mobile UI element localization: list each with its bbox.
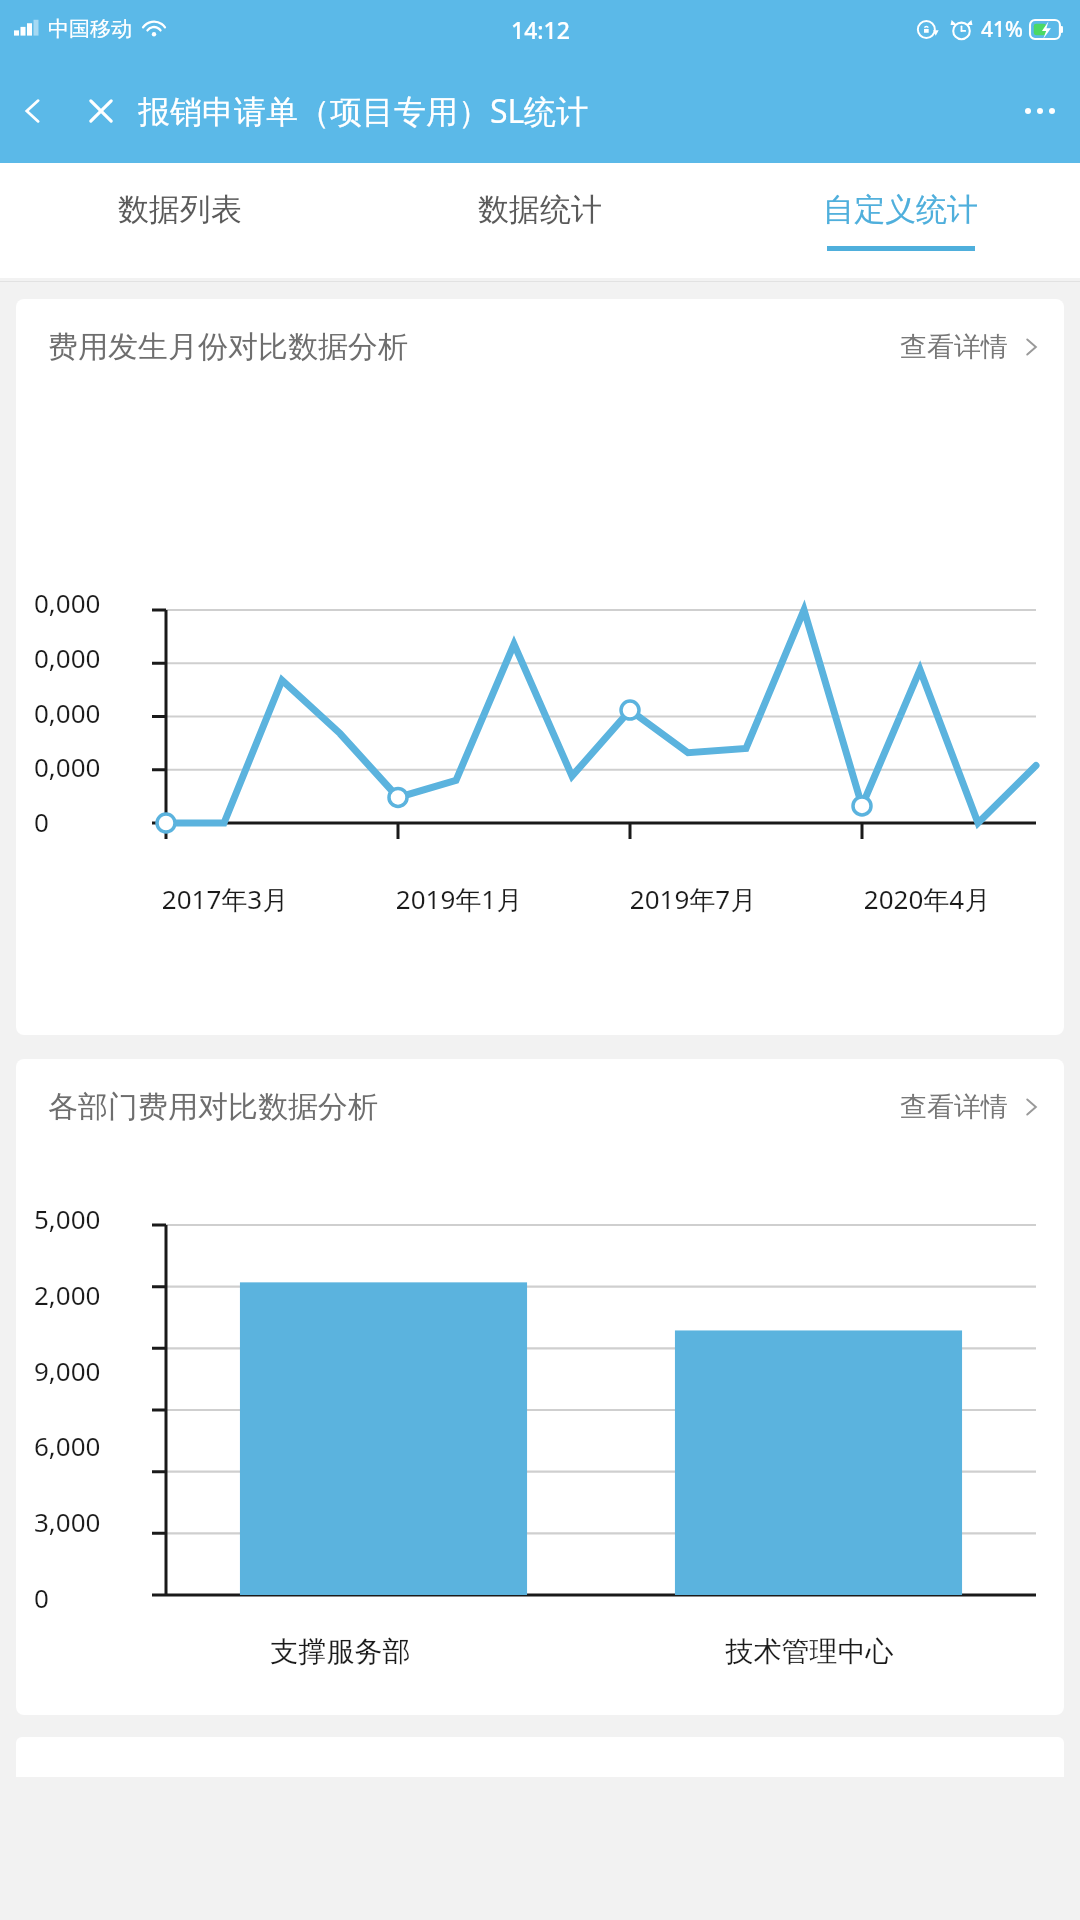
button[interactable]: 数据列表 xyxy=(0,163,360,278)
staticText: 0 xyxy=(34,1580,140,1615)
staticText: 0,000 xyxy=(34,585,140,620)
button[interactable]: 数据统计 xyxy=(360,163,720,278)
staticText: 6,000 xyxy=(34,1428,140,1463)
staticText: 2019年1月 xyxy=(342,881,576,917)
staticText: 5,000 xyxy=(34,1201,140,1236)
staticText: 2020年4月 xyxy=(810,881,1044,917)
button[interactable]: Close xyxy=(66,58,136,163)
button[interactable]: 查看详情 xyxy=(900,330,1042,364)
staticText: 0,000 xyxy=(34,695,140,730)
staticText: 各部门费用对比数据分析 xyxy=(48,1088,378,1126)
staticText: 2019年7月 xyxy=(576,881,810,917)
staticText: 14:12 xyxy=(511,14,570,45)
staticText: 中国移动 xyxy=(48,16,132,42)
button[interactable]: Back xyxy=(0,58,66,163)
staticText: 自定义统计 xyxy=(823,190,978,229)
staticText: 查看详情 xyxy=(900,330,1008,364)
staticText: 报销申请单（项目专用）SL统计 xyxy=(138,89,589,133)
staticText: 支撑服务部 xyxy=(106,1634,575,1669)
staticText: 数据统计 xyxy=(478,190,602,229)
button[interactable]: 自定义统计 xyxy=(720,163,1080,278)
button[interactable]: More options xyxy=(1000,58,1080,163)
staticText: 9,000 xyxy=(34,1353,140,1388)
staticText: 2017年3月 xyxy=(108,881,342,917)
button[interactable]: 查看详情 xyxy=(900,1090,1042,1124)
staticText: 查看详情 xyxy=(900,1090,1008,1124)
staticText: 数据列表 xyxy=(118,190,242,229)
staticText: 3,000 xyxy=(34,1504,140,1539)
staticText: 0,000 xyxy=(34,640,140,675)
staticText: 0,000 xyxy=(34,749,140,784)
staticText: 41% xyxy=(981,15,1023,44)
staticText: 费用发生月份对比数据分析 xyxy=(48,328,408,366)
staticText: 0 xyxy=(34,804,140,839)
staticText: 2,000 xyxy=(34,1277,140,1312)
staticText: 技术管理中心 xyxy=(575,1634,1044,1669)
